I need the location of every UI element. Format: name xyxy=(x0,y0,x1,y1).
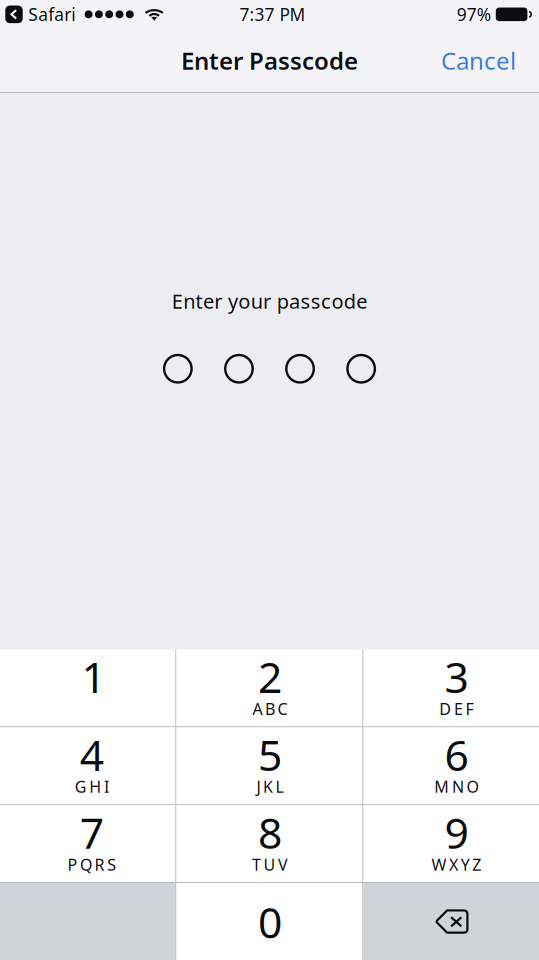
staticText: Enter your passcode xyxy=(172,288,367,314)
staticText: JKL xyxy=(256,776,284,797)
button[interactable]: 8 xyxy=(176,805,362,882)
staticText: DEF xyxy=(439,698,473,719)
staticText: WXYZ xyxy=(431,854,481,875)
staticText: 7 xyxy=(80,804,104,861)
staticText: 5 xyxy=(258,726,282,783)
staticText: Cancel xyxy=(441,44,516,76)
button[interactable]: 3 xyxy=(363,649,539,726)
staticText: PQRS xyxy=(67,854,116,875)
button[interactable]: 7 xyxy=(0,805,175,882)
staticText: 2 xyxy=(258,648,282,705)
staticText: MNO xyxy=(434,776,478,797)
button[interactable]: 9 xyxy=(363,805,539,882)
button[interactable]: 0 xyxy=(176,883,362,960)
staticText: 0 xyxy=(258,893,282,950)
staticText: 97% xyxy=(457,3,491,26)
button[interactable]: 5 xyxy=(176,727,362,804)
staticText: 6 xyxy=(444,726,468,783)
button[interactable]: Delete xyxy=(363,883,539,960)
staticText: 9 xyxy=(444,804,468,861)
button[interactable]: 1 xyxy=(0,649,175,726)
staticText: 7:37 PM xyxy=(239,3,305,26)
button[interactable]: 2 xyxy=(176,649,362,726)
button[interactable]: 6 xyxy=(363,727,539,804)
staticText: Enter Passcode xyxy=(181,44,358,76)
staticText: TUV xyxy=(252,854,288,875)
staticText: 8 xyxy=(258,804,282,861)
staticText: 3 xyxy=(444,648,468,705)
staticText: Safari xyxy=(28,3,75,26)
staticText: 4 xyxy=(80,726,104,783)
staticText: ABC xyxy=(252,698,288,719)
staticText: 1 xyxy=(82,648,106,705)
button[interactable]: 4 xyxy=(0,727,175,804)
staticText: GHI xyxy=(75,776,109,797)
button[interactable]: Cancel xyxy=(425,32,539,88)
